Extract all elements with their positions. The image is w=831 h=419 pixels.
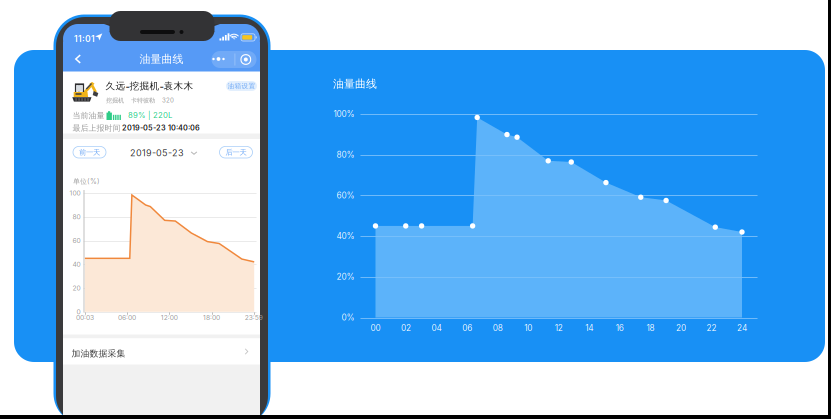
staticText: 89% | 220L <box>128 110 172 120</box>
staticText: 00 <box>370 323 380 333</box>
staticText: 60% <box>336 190 354 200</box>
button[interactable]: 2019-05-23 <box>130 147 198 158</box>
staticText: 油量曲线 <box>333 77 377 91</box>
staticText: 60 <box>72 236 80 245</box>
staticText: 100% <box>333 109 354 119</box>
staticText: 40% <box>336 231 354 241</box>
staticText: 12 <box>555 323 563 333</box>
staticText: 后一天 <box>225 148 246 157</box>
staticText: 23:59 <box>245 313 263 322</box>
staticText: 06:00 <box>118 313 136 322</box>
staticText: 18 <box>646 323 654 333</box>
button[interactable]: 后一天 <box>219 146 252 158</box>
staticText: 2019-05-23 <box>130 147 184 158</box>
button[interactable]: 前一天 <box>73 146 106 158</box>
staticText: 11:01 <box>74 33 95 44</box>
staticText: 挖掘机 <box>106 96 124 104</box>
staticText: 久远-挖掘机-袁木木 <box>105 80 193 92</box>
staticText: 20 <box>676 323 686 333</box>
staticText: 04 <box>432 323 442 333</box>
staticText: 油量曲线 <box>139 52 183 66</box>
staticText: 油箱设置 <box>227 82 255 90</box>
button[interactable]: Back <box>66 48 90 70</box>
staticText: 加油数据采集 <box>71 348 125 359</box>
staticText: 22 <box>706 323 716 333</box>
staticText: 02 <box>401 323 411 333</box>
staticText: 100 <box>69 189 80 197</box>
staticText: 06 <box>462 323 472 333</box>
staticText: 80 <box>72 213 80 221</box>
staticText: 0 <box>76 308 80 316</box>
staticText: 12:00 <box>161 313 178 322</box>
staticText: 卡特彼勒 <box>131 96 155 104</box>
staticText: 00:03 <box>76 313 94 322</box>
staticText: 16 <box>616 323 624 333</box>
staticText: 20% <box>336 272 354 282</box>
staticText: 80% <box>336 150 354 160</box>
button[interactable]: More <box>211 52 233 67</box>
staticText: 单位(%) <box>73 177 100 186</box>
staticText: 最后上报时间 <box>72 123 120 133</box>
button[interactable]: Locate <box>239 52 253 66</box>
staticText: 20 <box>72 284 80 292</box>
staticText: 08 <box>493 323 503 333</box>
staticText: 320 <box>162 97 174 104</box>
staticText: 前一天 <box>79 148 100 157</box>
staticText: 14 <box>585 323 593 333</box>
staticText: 24 <box>737 323 747 333</box>
staticText: 18:00 <box>203 313 220 322</box>
staticText: 40 <box>72 260 80 268</box>
staticText: 10 <box>524 323 532 333</box>
staticText: 2019-05-23 10:40:06 <box>122 123 200 132</box>
button[interactable]: 油箱设置 <box>226 81 257 91</box>
staticText: 当前油量 <box>72 110 104 121</box>
button[interactable]: 加油数据采集 <box>63 338 260 364</box>
staticText: 0% <box>341 312 354 322</box>
